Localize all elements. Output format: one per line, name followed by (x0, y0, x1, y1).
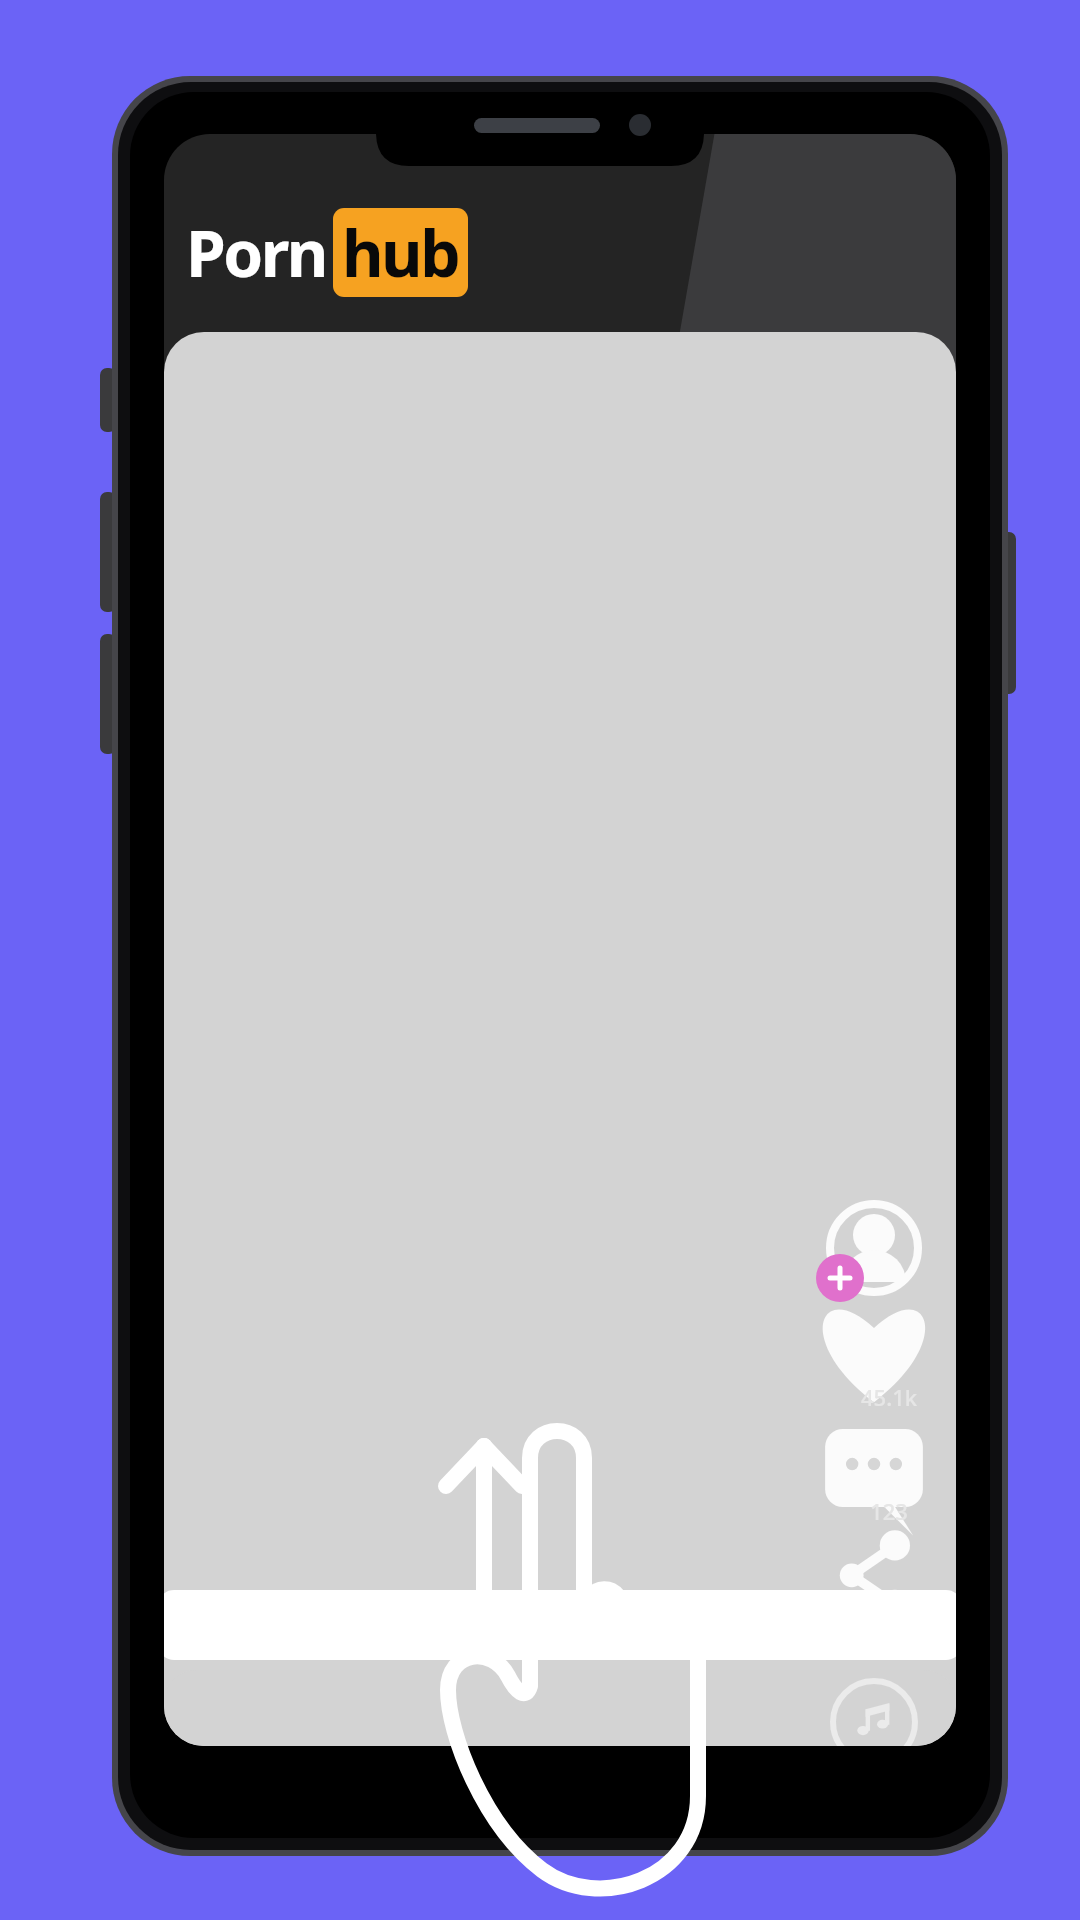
button[interactable]: Follow creator (845, 1196, 937, 1288)
staticText: hub (342, 209, 459, 296)
staticText: Porn (186, 209, 326, 296)
button[interactable]: Porn (186, 208, 468, 297)
staticText: 45.1k (856, 1382, 922, 1412)
staticText: 123 (856, 1496, 922, 1526)
button[interactable]: Like (845, 1298, 937, 1410)
button[interactable]: Sound (846, 1680, 932, 1766)
button[interactable]: Share (845, 1534, 937, 1598)
button[interactable]: Comment (845, 1418, 937, 1528)
